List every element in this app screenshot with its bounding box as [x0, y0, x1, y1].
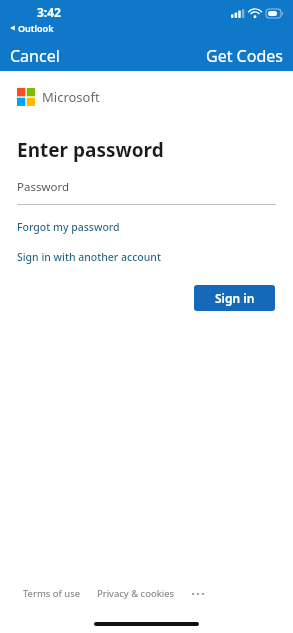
staticText: Forgot my password	[17, 220, 120, 234]
staticText: Microsoft	[42, 88, 100, 106]
staticText: Sign in with another account	[17, 250, 161, 264]
button[interactable]: Sign in with another account	[0, 248, 178, 266]
staticText: Outlook	[18, 22, 54, 34]
button[interactable]: Get Codes	[198, 41, 293, 71]
button[interactable]: Privacy & cookies	[97, 583, 175, 604]
button[interactable]: Sign in	[194, 285, 275, 311]
staticText: Password	[17, 179, 70, 195]
staticText: Cancel	[10, 45, 60, 67]
staticText: 3:42	[37, 4, 61, 20]
staticText: Sign in	[215, 290, 255, 306]
button[interactable]: Forgot my password	[0, 218, 137, 236]
button[interactable]: More options	[189, 587, 207, 601]
button[interactable]: Terms of use	[23, 583, 81, 604]
staticText: Get Codes	[206, 45, 283, 67]
button[interactable]: Password	[17, 179, 276, 205]
button[interactable]: Cancel	[0, 41, 68, 71]
staticText: Enter password	[17, 137, 164, 163]
staticText: Privacy & cookies	[97, 587, 175, 600]
staticText: Terms of use	[23, 587, 81, 600]
